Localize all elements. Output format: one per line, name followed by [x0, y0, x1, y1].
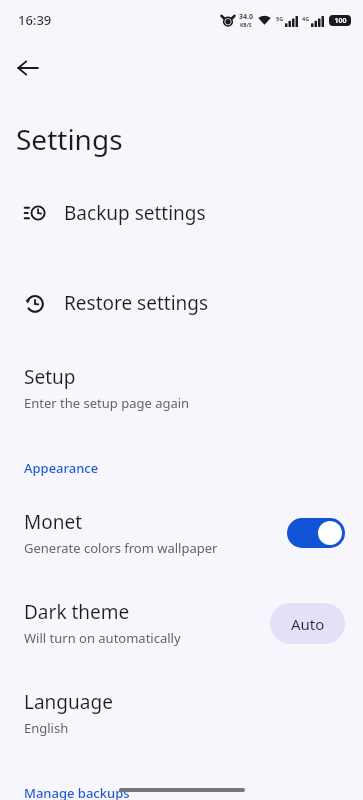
staticText: Monet — [24, 509, 83, 535]
staticText: Enter the setup page again — [24, 394, 190, 412]
staticText: Will turn on automatically — [24, 629, 181, 647]
staticText: 4G — [302, 15, 310, 22]
staticText: Backup settings — [64, 200, 206, 226]
button[interactable]: Setup — [0, 362, 363, 414]
staticText: 5G — [276, 15, 284, 22]
button[interactable]: Auto — [270, 603, 345, 644]
staticText: 34.0 — [239, 12, 253, 22]
staticText: Setup — [24, 364, 76, 390]
button[interactable]: Restore settings — [0, 286, 363, 320]
staticText: English — [24, 719, 69, 737]
button[interactable]: Back — [8, 48, 48, 88]
staticText: Restore settings — [64, 290, 209, 316]
button[interactable]: Language — [0, 687, 363, 739]
staticText: Appearance — [24, 459, 99, 477]
button[interactable]: Monet — [0, 507, 363, 559]
staticText: Manage backups — [24, 784, 130, 800]
staticText: Dark theme — [24, 599, 130, 625]
button[interactable]: Backup settings — [0, 196, 363, 230]
staticText: Generate colors from wallpaper — [24, 539, 218, 557]
staticText: 16:39 — [18, 11, 52, 29]
staticText: Settings — [16, 120, 123, 158]
staticText: 100 — [334, 16, 347, 26]
staticText: Language — [24, 689, 113, 715]
staticText: KB/S — [240, 22, 252, 29]
staticText: Auto — [291, 614, 325, 634]
button[interactable]: Dark theme — [0, 597, 363, 649]
button[interactable]: Monet toggle, on — [287, 518, 345, 548]
